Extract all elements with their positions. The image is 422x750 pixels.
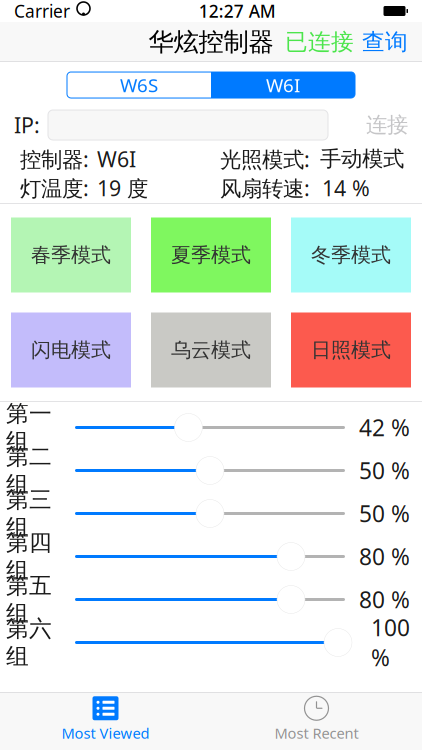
staticText: 春季模式 — [31, 243, 111, 267]
button[interactable]: 连接 — [366, 112, 408, 138]
staticText: 100 % — [371, 612, 410, 673]
staticText: 第四组 — [6, 529, 52, 584]
button[interactable]: 冬季模式 — [291, 217, 411, 292]
staticText: 第一组 — [6, 400, 52, 455]
staticText: 80 % — [359, 541, 410, 571]
button[interactable]: Most Viewed — [0, 690, 211, 743]
button[interactable]: 查询 — [354, 28, 408, 56]
staticText: 乌云模式 — [171, 338, 251, 362]
button[interactable]: Most Recent — [211, 690, 422, 743]
staticText: W6I — [97, 145, 136, 173]
staticText: IP: — [14, 111, 40, 139]
button[interactable]: 夏季模式 — [151, 217, 271, 292]
staticText: 光照模式: — [220, 145, 310, 173]
button[interactable]: W6I — [211, 72, 355, 98]
button[interactable]: W6S — [67, 72, 211, 98]
button[interactable]: 春季模式 — [11, 217, 131, 292]
staticText: 日照模式 — [311, 338, 391, 362]
staticText: W6I — [266, 73, 300, 97]
staticText: 19 度 — [97, 174, 148, 202]
staticText: 已连接 — [285, 28, 354, 56]
button[interactable]: 已连接 — [285, 28, 354, 56]
staticText: 42 % — [359, 412, 410, 442]
staticText: 50 % — [359, 498, 410, 528]
staticText: Most Viewed — [61, 723, 149, 743]
staticText: 第二组 — [6, 443, 52, 498]
staticText: 夏季模式 — [171, 243, 251, 267]
staticText: 第五组 — [6, 572, 52, 627]
button[interactable]: 日照模式 — [291, 312, 411, 387]
staticText: 80 % — [359, 584, 410, 614]
staticText: 第六组 — [6, 615, 52, 670]
staticText: 控制器: — [20, 145, 89, 173]
staticText: 14 % — [322, 174, 370, 202]
staticText: Most Recent — [274, 723, 358, 743]
staticText: 冬季模式 — [311, 243, 391, 267]
staticText: 手动模式 — [320, 146, 404, 172]
staticText: Carrier — [14, 0, 70, 22]
staticText: 闪电模式 — [31, 338, 111, 362]
staticText: 连接 — [366, 112, 408, 138]
staticText: 风扇转速: — [220, 174, 310, 202]
staticText: 50 % — [359, 455, 410, 485]
staticText: 查询 — [362, 28, 408, 56]
staticText: 灯温度: — [20, 174, 89, 202]
staticText: 第三组 — [6, 486, 52, 541]
staticText: W6S — [120, 73, 158, 97]
staticText: 华炫控制器 — [148, 26, 273, 57]
staticText: 12:27 AM — [199, 0, 276, 22]
button[interactable]: 乌云模式 — [151, 312, 271, 387]
button[interactable]: 闪电模式 — [11, 312, 131, 387]
